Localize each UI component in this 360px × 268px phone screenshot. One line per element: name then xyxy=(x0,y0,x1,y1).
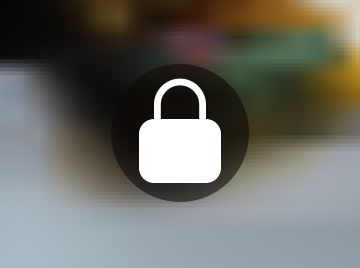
button[interactable]: Locked xyxy=(0,0,360,268)
